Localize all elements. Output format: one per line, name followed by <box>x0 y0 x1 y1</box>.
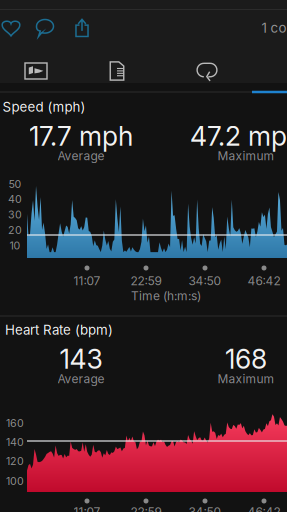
staticText: 20 <box>8 223 22 236</box>
staticText: 11:07 <box>73 505 100 512</box>
staticText: Average <box>57 149 104 163</box>
staticText: 143 <box>59 343 102 375</box>
staticText: 34:50 <box>188 505 221 512</box>
staticText: 40 <box>8 192 22 205</box>
button[interactable]: Laps <box>175 52 239 90</box>
staticText: 22:59 <box>130 505 161 512</box>
button[interactable]: Map <box>4 52 68 90</box>
staticText: 120 <box>6 454 24 467</box>
staticText: 30 <box>8 208 22 221</box>
staticText: Time (h:m:s) <box>131 289 201 303</box>
staticText: 47.2 mph <box>190 120 287 152</box>
staticText: 50 <box>8 177 21 190</box>
staticText: 11:07 <box>73 274 100 288</box>
staticText: 140 <box>6 435 24 448</box>
staticText: 17.7 mph <box>29 120 133 152</box>
staticText: Speed (mph) <box>2 99 85 115</box>
staticText: Maximum <box>217 372 274 386</box>
button[interactable]: Comment <box>29 13 61 43</box>
staticText: 160 <box>6 416 24 429</box>
button[interactable]: Share <box>66 13 98 43</box>
button[interactable]: Like <box>0 13 27 43</box>
staticText: Heart Rate (bpm) <box>5 322 113 338</box>
staticText: 34:50 <box>188 274 221 288</box>
staticText: 46:42 <box>247 505 280 512</box>
staticText: 22:59 <box>130 274 161 288</box>
staticText: Maximum <box>217 149 274 163</box>
button[interactable]: 1 co <box>261 14 286 42</box>
staticText: 168 <box>225 343 267 375</box>
staticText: 100 <box>6 474 24 487</box>
staticText: 10 <box>9 239 20 252</box>
staticText: 1 co <box>261 20 286 36</box>
staticText: Average <box>57 372 104 386</box>
staticText: 46:42 <box>247 274 280 288</box>
button[interactable]: Details <box>85 52 149 90</box>
